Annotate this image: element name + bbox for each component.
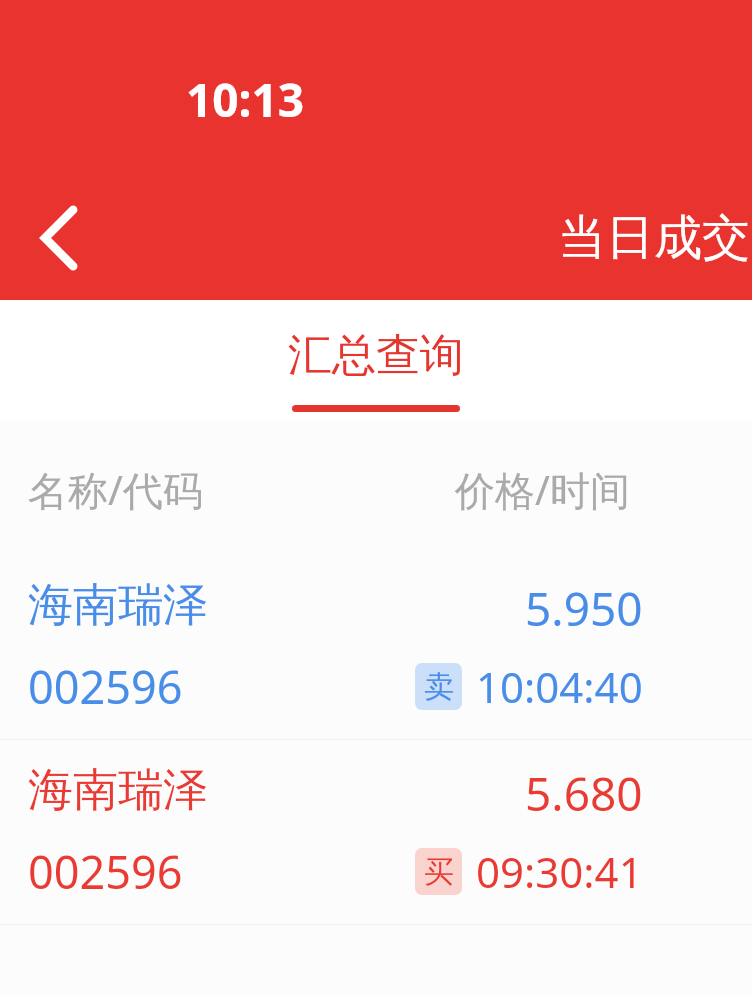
staticText: 10:13: [186, 68, 305, 131]
staticText: 5.680: [525, 762, 643, 825]
staticText: 卖: [424, 668, 454, 706]
button[interactable]: 海南瑞泽: [0, 740, 752, 924]
staticText: 买: [424, 853, 454, 891]
staticText: 002596: [28, 841, 183, 902]
staticText: 海南瑞泽: [28, 762, 208, 819]
staticText: 当日成交: [558, 208, 750, 268]
button[interactable]: 海南瑞泽: [0, 555, 752, 739]
button[interactable]: Back: [12, 190, 108, 286]
staticText: 5.950: [525, 577, 643, 640]
staticText: 汇总查询: [288, 328, 464, 383]
button[interactable]: 汇总查询: [276, 300, 476, 420]
staticText: 10:04:40: [476, 658, 643, 715]
staticText: 价格/时间: [455, 462, 630, 517]
staticText: 09:30:41: [476, 843, 643, 900]
staticText: 名称/代码: [28, 462, 203, 517]
staticText: 002596: [28, 656, 183, 717]
staticText: 海南瑞泽: [28, 577, 208, 634]
